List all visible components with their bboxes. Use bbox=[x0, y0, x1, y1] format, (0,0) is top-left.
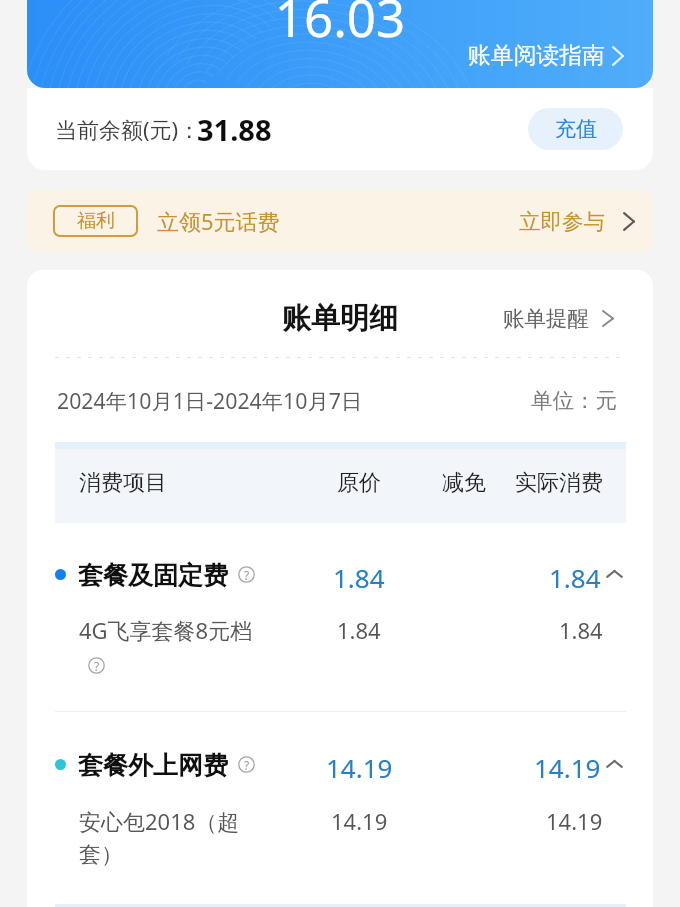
staticText: 套餐外上网费 bbox=[78, 750, 228, 778]
staticText: 31.88 bbox=[197, 110, 272, 149]
button[interactable]: 账单提醒 bbox=[491, 297, 626, 340]
staticText: 立领5元话费 bbox=[157, 206, 280, 236]
staticText: 账单阅读指南 bbox=[468, 41, 605, 70]
staticText: ? bbox=[244, 567, 250, 583]
staticText: 账单提醒 bbox=[503, 305, 589, 332]
staticText: 1.84 bbox=[333, 560, 385, 588]
staticText: 1.84 bbox=[337, 615, 381, 645]
staticText: 14.19 bbox=[326, 750, 393, 778]
staticText: 安心包2018（超套） bbox=[79, 806, 261, 868]
button[interactable]: 福利 bbox=[27, 190, 653, 252]
button[interactable]: 账单阅读指南 bbox=[456, 29, 636, 82]
staticText: 4G飞享套餐8元档 bbox=[79, 615, 253, 645]
staticText: ? bbox=[94, 658, 100, 674]
other: 帮助 bbox=[88, 657, 105, 674]
staticText: 原价 bbox=[337, 469, 381, 497]
button[interactable]: 套餐及固定费 bbox=[27, 560, 653, 588]
other: 帮助 bbox=[238, 756, 255, 773]
staticText: 套餐及固定费 bbox=[78, 560, 228, 588]
staticText: 账单明细 bbox=[282, 300, 398, 337]
staticText: 2024年10月1日-2024年10月7日 bbox=[57, 386, 363, 415]
button[interactable]: 充值 bbox=[528, 108, 623, 150]
other: 帮助 bbox=[238, 566, 255, 583]
staticText: 减免 bbox=[442, 469, 486, 497]
staticText: 福利 bbox=[77, 209, 115, 233]
staticText: ? bbox=[244, 757, 250, 773]
staticText: 单位：元 bbox=[531, 387, 617, 414]
staticText: 14.19 bbox=[331, 806, 388, 836]
staticText: 16.03 bbox=[27, 0, 653, 51]
staticText: 1.84 bbox=[559, 615, 603, 645]
staticText: 实际消费 bbox=[515, 469, 603, 497]
staticText: 充值 bbox=[555, 116, 597, 142]
staticText: 1.84 bbox=[549, 560, 601, 588]
staticText: 14.19 bbox=[534, 750, 601, 778]
staticText: 消费项目 bbox=[79, 469, 167, 497]
button[interactable]: 套餐外上网费 bbox=[27, 750, 653, 778]
staticText: 14.19 bbox=[546, 806, 603, 836]
staticText: 当前余额(元)： bbox=[55, 114, 201, 144]
staticText: 立即参与 bbox=[519, 208, 605, 235]
